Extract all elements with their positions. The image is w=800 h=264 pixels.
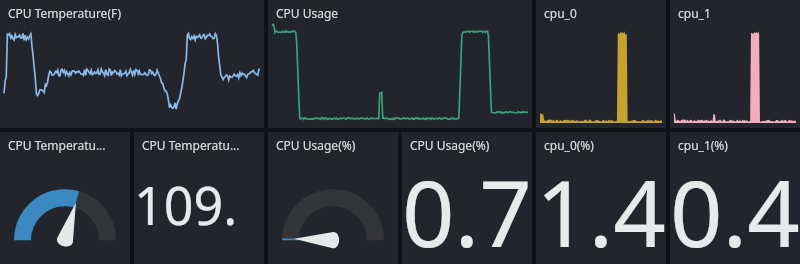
staticText: CPU Temperature(F) <box>8 5 122 21</box>
staticText: cpu_1(%) <box>678 137 728 153</box>
staticText: 0.4 <box>670 149 800 260</box>
staticText: cpu_0 <box>544 5 577 21</box>
staticText: 1.4 <box>536 149 666 260</box>
button[interactable]: cpu_0(%) <box>536 132 666 264</box>
button[interactable]: CPU Usage(%) <box>402 132 532 264</box>
button[interactable]: CPU Usage <box>268 0 532 128</box>
button[interactable]: CPU Temperature(F) <box>0 0 264 128</box>
staticText: cpu_1 <box>678 5 711 21</box>
staticText: cpu_0(%) <box>544 137 594 153</box>
button[interactable]: CPU Temperatu... <box>0 132 130 264</box>
staticText: CPU Usage(%) <box>410 137 490 153</box>
staticText: CPU Temperatu... <box>8 137 106 153</box>
staticText: CPU Usage <box>276 5 339 21</box>
button[interactable]: cpu_0 <box>536 0 666 128</box>
staticText: 0.7 <box>402 149 532 260</box>
button[interactable]: CPU Usage(%) <box>268 132 398 264</box>
button[interactable]: CPU Temperatu... <box>134 132 264 264</box>
staticText: CPU Temperatu... <box>142 137 240 153</box>
staticText: 109.04 <box>134 169 264 240</box>
button[interactable]: cpu_1(%) <box>670 132 800 264</box>
staticText: CPU Usage(%) <box>276 137 356 153</box>
button[interactable]: cpu_1 <box>670 0 800 128</box>
